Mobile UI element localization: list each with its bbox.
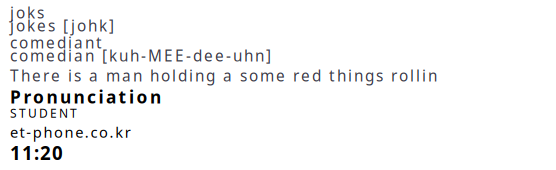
staticText: jokes [johk] bbox=[10, 15, 120, 36]
staticText: There is a man holding a some red things… bbox=[10, 65, 443, 86]
staticText: comedian [kuh-MEE-dee-uhn] bbox=[10, 45, 277, 66]
staticText: 11:20 bbox=[10, 140, 69, 165]
staticText: comediant bbox=[10, 32, 108, 53]
staticText: Pronunciation bbox=[10, 85, 168, 109]
staticText: joks bbox=[10, 2, 50, 23]
staticText: et-phone.co.kr bbox=[10, 122, 136, 142]
staticText: STUDENT bbox=[10, 105, 82, 121]
